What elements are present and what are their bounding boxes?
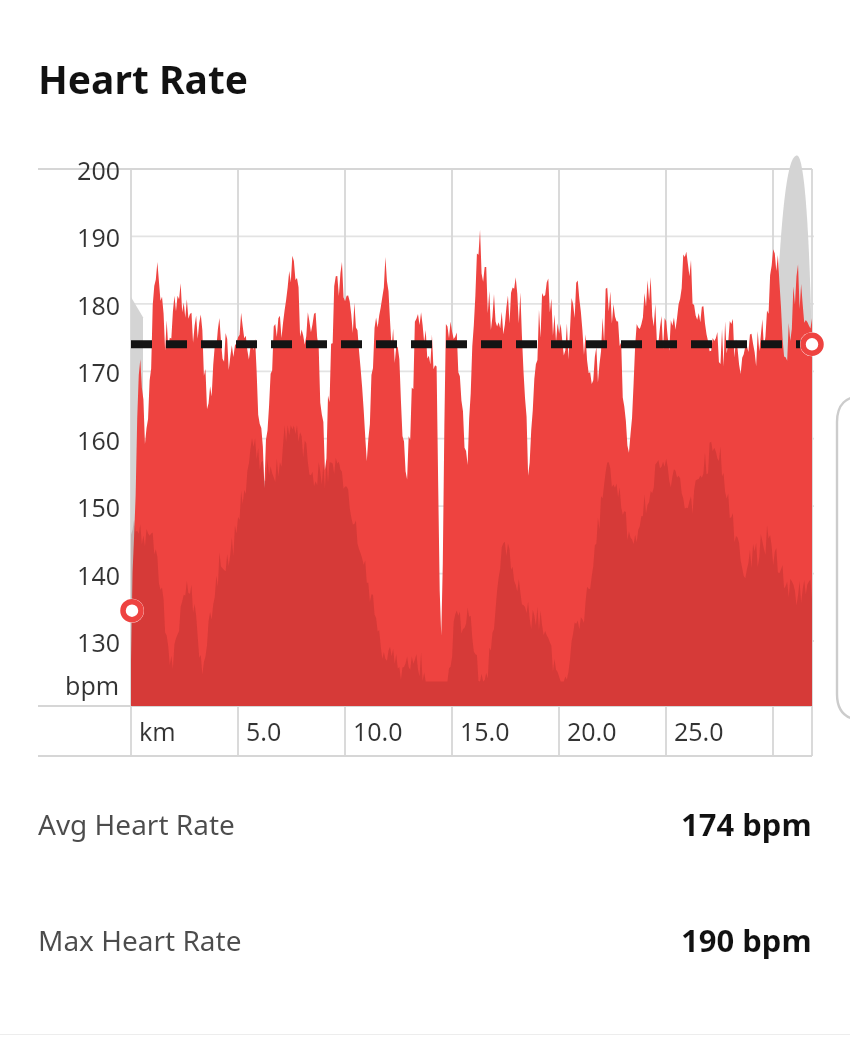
staticText: 180 — [77, 288, 120, 322]
staticText: 174 bpm — [681, 803, 812, 845]
staticText: 190 — [77, 220, 120, 254]
staticText: 5.0 — [246, 714, 282, 748]
staticText: Avg Heart Rate — [38, 805, 235, 843]
staticText: 190 bpm — [681, 919, 812, 961]
staticText: 25.0 — [674, 714, 724, 748]
button[interactable]: Avg Heart Rate — [0, 802, 850, 846]
button[interactable]: Max Heart Rate — [0, 918, 850, 962]
staticText: 140 — [77, 558, 120, 592]
staticText: 170 — [77, 355, 120, 389]
staticText: 200 — [77, 153, 120, 187]
staticText: Heart Rate — [38, 52, 249, 105]
staticText: Max Heart Rate — [38, 921, 242, 959]
staticText: bpm — [65, 668, 120, 702]
staticText: km — [139, 714, 176, 748]
staticText: 15.0 — [460, 714, 510, 748]
button[interactable]: Heart rate chart — [0, 0, 850, 1040]
staticText: 20.0 — [567, 714, 617, 748]
staticText: 10.0 — [353, 714, 403, 748]
staticText: 150 — [77, 490, 120, 524]
staticText: 130 — [77, 625, 120, 659]
staticText: 160 — [77, 423, 120, 457]
